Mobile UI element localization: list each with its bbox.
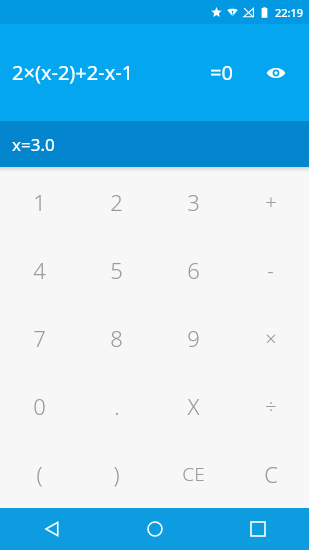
staticText: 0 — [33, 391, 46, 421]
button[interactable]: 3 — [155, 167, 232, 236]
staticText: ) — [113, 459, 120, 489]
button[interactable]: Toggle visibility — [259, 56, 293, 90]
staticText: × — [265, 325, 277, 352]
staticText: 2×(x-2)+2-x-1 — [12, 59, 134, 86]
staticText: . — [114, 391, 120, 421]
button[interactable]: X — [155, 372, 232, 440]
staticText: 9 — [187, 323, 200, 353]
button[interactable]: 4 — [0, 236, 78, 304]
staticText: 3 — [187, 187, 200, 217]
staticText: 4 — [33, 255, 46, 285]
button[interactable]: 8 — [78, 304, 155, 372]
button[interactable]: 7 — [0, 304, 78, 372]
button[interactable]: + — [232, 167, 309, 236]
button[interactable]: × — [232, 304, 309, 372]
button[interactable]: C — [232, 440, 309, 508]
staticText: X — [187, 391, 200, 421]
staticText: 7 — [33, 323, 46, 353]
staticText: 5 — [110, 255, 123, 285]
button[interactable]: 1 — [0, 167, 78, 236]
button[interactable]: 2 — [78, 167, 155, 236]
staticText: + — [265, 188, 277, 215]
button[interactable]: 9 — [155, 304, 232, 372]
staticText: 8 — [110, 323, 123, 353]
staticText: ÷ — [265, 393, 277, 420]
button[interactable]: Recents — [206, 508, 309, 550]
staticText: ( — [36, 459, 43, 489]
button[interactable]: ÷ — [232, 372, 309, 440]
staticText: =0 — [210, 59, 233, 86]
staticText: - — [267, 257, 274, 284]
button[interactable]: Back — [0, 508, 103, 550]
button[interactable]: ( — [0, 440, 78, 508]
button[interactable]: 5 — [78, 236, 155, 304]
staticText: 22:19 — [275, 5, 304, 20]
button[interactable]: 0 — [0, 372, 78, 440]
staticText: CE — [182, 461, 205, 487]
button[interactable]: 6 — [155, 236, 232, 304]
button[interactable]: Home — [103, 508, 206, 550]
button[interactable]: CE — [155, 440, 232, 508]
staticText: 2 — [110, 187, 123, 217]
staticText: 1 — [33, 187, 46, 217]
staticText: C — [264, 459, 278, 489]
button[interactable]: ) — [78, 440, 155, 508]
staticText: x=3.0 — [12, 133, 55, 156]
staticText: 6 — [187, 255, 200, 285]
button[interactable]: x=3.0 — [0, 121, 309, 167]
